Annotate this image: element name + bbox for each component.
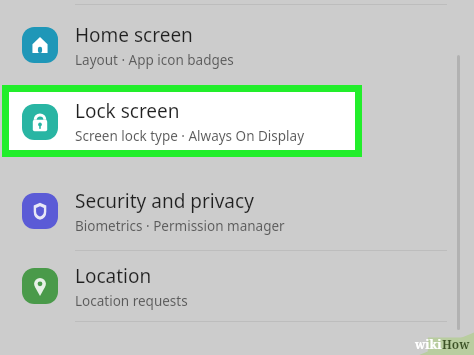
button[interactable]: Location — [0, 251, 474, 321]
staticText: wiki — [415, 336, 442, 352]
staticText: Location — [75, 263, 152, 289]
staticText: Home screen — [75, 22, 193, 48]
staticText: Location requests — [75, 292, 188, 310]
button[interactable]: Security and privacy — [0, 172, 474, 250]
button[interactable]: Lock screen — [9, 92, 355, 150]
staticText: Security and privacy — [75, 188, 254, 214]
staticText: How — [442, 336, 470, 352]
staticText: Lock screen — [75, 98, 180, 124]
staticText: Screen lock type · Always On Display — [75, 127, 305, 145]
button[interactable]: Home screen — [0, 5, 474, 85]
staticText: Biometrics · Permission manager — [75, 217, 285, 235]
staticText: Layout · App icon badges — [75, 51, 234, 69]
